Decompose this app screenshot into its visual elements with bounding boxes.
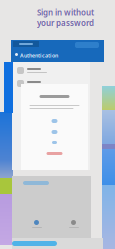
staticText: Authentication: [20, 52, 58, 59]
button[interactable]: [15, 64, 55, 77]
staticText: Sign in without: [37, 7, 94, 18]
staticText: your password: [37, 18, 94, 28]
button[interactable]: [15, 77, 55, 90]
